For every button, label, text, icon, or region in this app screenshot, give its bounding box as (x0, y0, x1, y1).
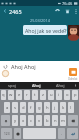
button[interactable]: Send (69, 68, 77, 76)
staticText: k (62, 105, 65, 111)
button[interactable]: Ahoj jak se vede? (23, 25, 67, 35)
button[interactable]: u (48, 90, 54, 100)
button[interactable]: Ahoj (48, 82, 72, 89)
staticText: z (42, 92, 44, 98)
button[interactable]: c (28, 115, 34, 126)
staticText: Ahoj Ahoj (11, 63, 36, 70)
staticText: b (46, 118, 49, 124)
staticText: s (14, 105, 17, 111)
button[interactable]: Delete (62, 6, 72, 16)
staticText: . (61, 131, 63, 137)
button[interactable]: More options (72, 6, 79, 16)
button[interactable]: a (4, 102, 10, 113)
button[interactable]: f (28, 102, 34, 113)
button[interactable]: i (56, 90, 62, 100)
button[interactable]: d (20, 102, 26, 113)
staticText: 2465 (9, 8, 22, 15)
button[interactable]: s (12, 102, 18, 113)
staticText: f (30, 105, 32, 111)
staticText: j (54, 105, 56, 111)
button[interactable]: y (12, 115, 18, 126)
button[interactable]: Attach (1, 62, 10, 71)
button[interactable]: g (36, 102, 42, 113)
staticText: Ahoj jak se vede? (25, 27, 67, 34)
button[interactable]: q (1, 90, 6, 100)
staticText: m (61, 118, 65, 124)
staticText: a (6, 105, 9, 111)
button[interactable]: Shift (1, 115, 10, 126)
button[interactable]: Ahoj (24, 82, 48, 89)
staticText: 76:46 (62, 1, 73, 6)
button[interactable]: p (72, 90, 78, 100)
staticText: Ahoj (32, 83, 41, 88)
button[interactable]: w (8, 90, 14, 100)
button[interactable]: t (32, 90, 38, 100)
staticText: q (2, 92, 5, 98)
staticText: t (34, 92, 36, 98)
staticText: 25.03/2014 (30, 18, 50, 23)
staticText: 123 (4, 132, 10, 136)
button[interactable]: e (16, 90, 22, 100)
staticText: h (46, 105, 49, 111)
button[interactable]: Call (52, 6, 62, 16)
button[interactable]: j (52, 102, 58, 113)
staticText: o (66, 92, 69, 98)
button[interactable]: spoj (0, 82, 24, 89)
button[interactable]: More suggestions (72, 82, 79, 89)
button[interactable]: Backspace (68, 115, 78, 126)
button[interactable]: o (64, 90, 70, 100)
staticText: e (18, 92, 21, 98)
button[interactable]: v (36, 115, 42, 126)
button[interactable]: z (40, 90, 46, 100)
button[interactable]: 123 (1, 128, 12, 139)
button[interactable]: m (60, 115, 66, 126)
staticText: g (38, 105, 41, 111)
staticText: i (58, 92, 60, 98)
button[interactable]: l (68, 102, 74, 113)
button[interactable]: n (52, 115, 58, 126)
button[interactable]: x (20, 115, 26, 126)
staticText: x (22, 118, 25, 124)
staticText: y (14, 118, 17, 124)
staticText: c (30, 118, 33, 124)
button[interactable]: b (44, 115, 50, 126)
staticText: Ahoj (56, 83, 65, 88)
staticText: w (9, 92, 13, 98)
staticText: u (50, 92, 53, 98)
staticText: r (26, 92, 28, 98)
button[interactable]: Enter (67, 128, 78, 139)
button[interactable]: r (24, 90, 30, 100)
button[interactable]: Emoji (14, 128, 21, 139)
staticText: l (70, 105, 72, 111)
staticText: p (74, 92, 77, 98)
staticText: v (38, 118, 41, 124)
staticText: spoj (8, 83, 16, 88)
button[interactable]: h (44, 102, 50, 113)
staticText: d (22, 105, 25, 111)
button[interactable]: Emoji (1, 69, 10, 78)
button[interactable]: Back (0, 6, 9, 16)
staticText: n (54, 118, 57, 124)
button[interactable]: k (60, 102, 66, 113)
staticText: Odeslat (68, 77, 78, 81)
